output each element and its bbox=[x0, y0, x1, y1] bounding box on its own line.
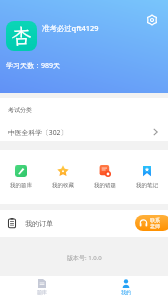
button[interactable]: 中医全科学〔302〕 bbox=[0, 123, 168, 141]
staticText: 老师 bbox=[150, 223, 160, 229]
button[interactable]: 联系 bbox=[135, 215, 168, 231]
staticText: 我的收藏 bbox=[52, 182, 74, 189]
button[interactable]: 我的订单 bbox=[0, 210, 168, 237]
staticText: 我的题库 bbox=[10, 182, 32, 189]
button[interactable]: 我的笔记 bbox=[126, 150, 168, 204]
staticText: 联系 bbox=[150, 217, 160, 223]
staticText: 中医全科学〔302〕 bbox=[8, 128, 68, 137]
staticText: 准考必过qft4129 bbox=[42, 23, 99, 33]
button[interactable]: 题库 bbox=[0, 276, 84, 300]
staticText: 我的错题 bbox=[94, 182, 116, 189]
button[interactable]: 我的收藏 bbox=[42, 150, 84, 204]
staticText: 题库 bbox=[37, 289, 47, 295]
staticText: 考试分类 bbox=[8, 106, 32, 114]
button[interactable]: 杏 bbox=[6, 21, 37, 51]
staticText: 我的订单 bbox=[25, 219, 53, 228]
button[interactable]: 我的题库 bbox=[0, 150, 42, 204]
staticText: 版本号: 1.0.0 bbox=[67, 254, 102, 262]
staticText: 我的笔记 bbox=[136, 182, 158, 189]
staticText: 杏 bbox=[11, 22, 32, 50]
button[interactable]: 我的 bbox=[84, 276, 168, 300]
button[interactable]: 我的错题 bbox=[84, 150, 126, 204]
staticText: 学习天数：989天 bbox=[6, 61, 61, 71]
button[interactable]: Settings bbox=[144, 12, 160, 28]
staticText: 我的 bbox=[121, 289, 131, 295]
